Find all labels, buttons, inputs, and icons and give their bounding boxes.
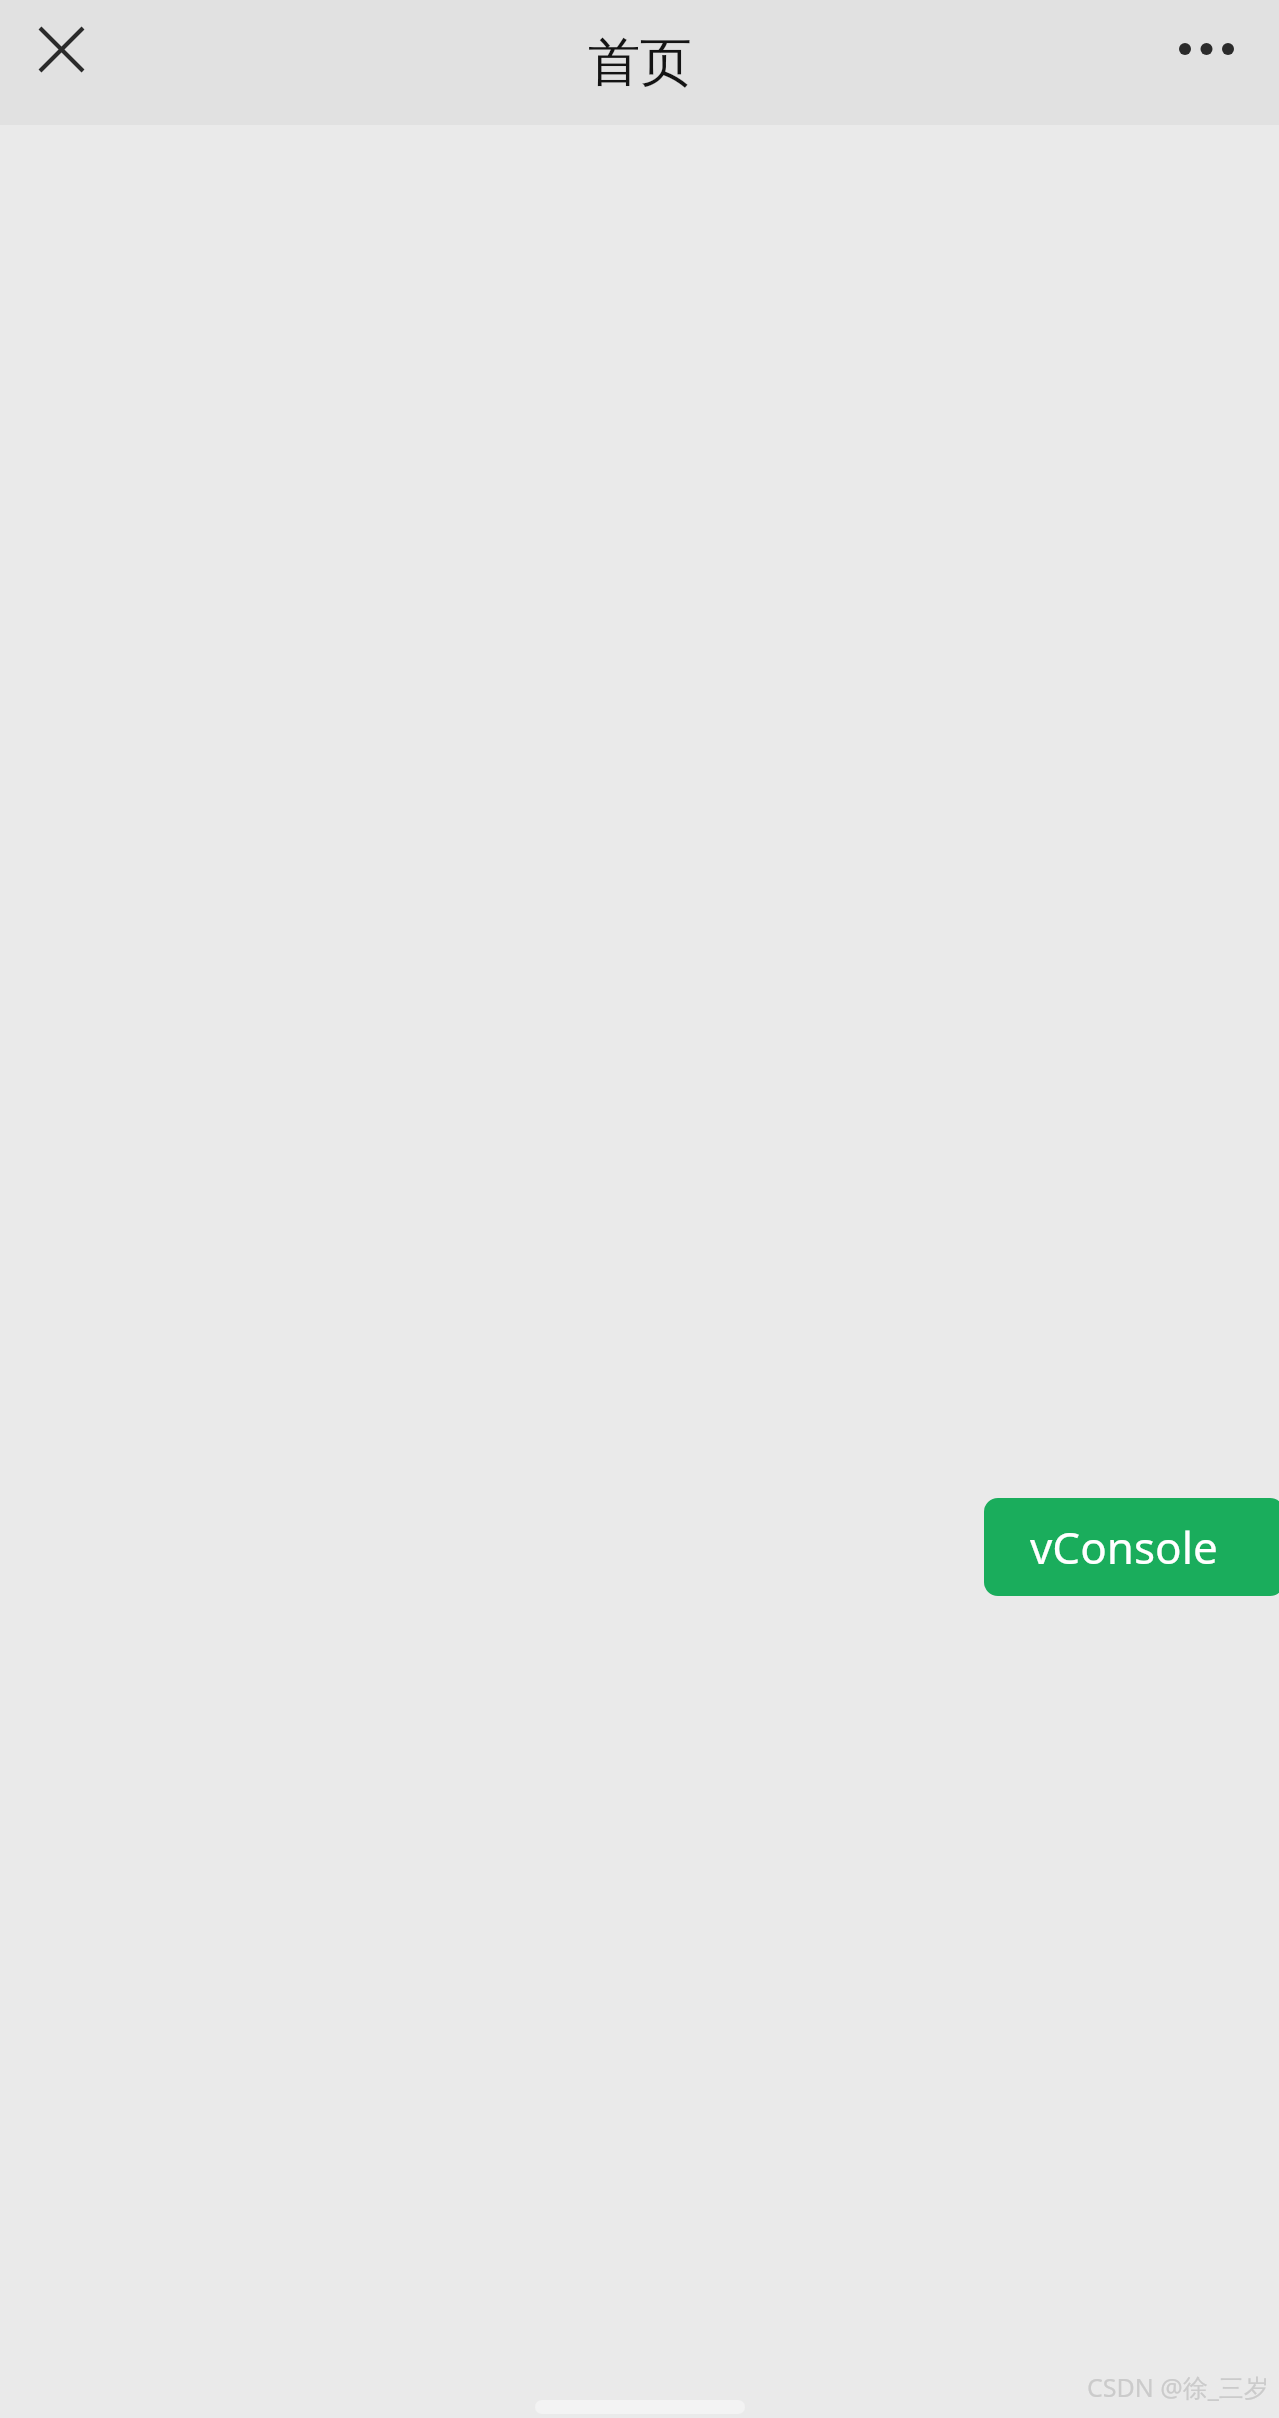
button[interactable]: vConsole — [984, 1498, 1279, 1596]
staticText: CSDN @徐_三岁 — [1087, 2370, 1269, 2404]
staticText: 首页 — [588, 30, 692, 96]
button[interactable]: More options — [1151, 0, 1261, 98]
button[interactable]: Close — [12, 0, 110, 98]
staticText: vConsole — [1030, 1517, 1218, 1577]
